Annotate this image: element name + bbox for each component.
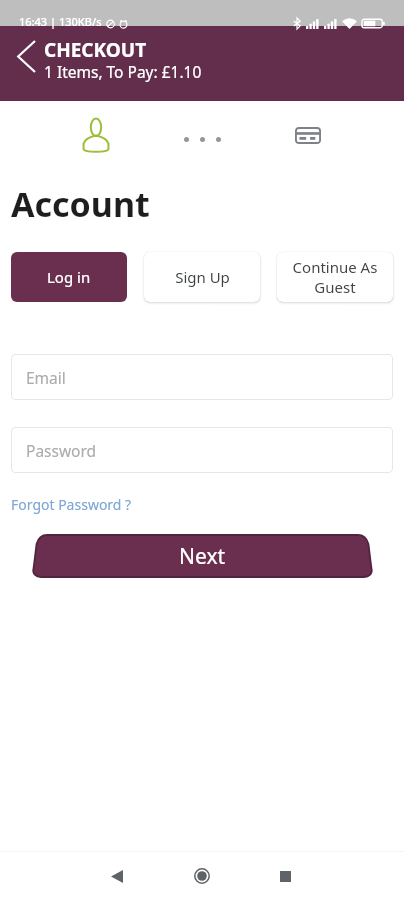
button[interactable]: Continue As Guest xyxy=(277,252,393,302)
staticText: CHECKOUT xyxy=(44,37,147,63)
button[interactable]: Forgot Password ? xyxy=(11,495,132,514)
staticText: Next xyxy=(179,542,226,571)
button[interactable]: Payment step xyxy=(288,120,328,150)
button[interactable]: Back xyxy=(0,26,44,86)
staticText: Password xyxy=(26,440,97,461)
staticText: Sign Up xyxy=(175,267,230,287)
button[interactable]: Sign Up xyxy=(144,252,260,302)
staticText: Log in xyxy=(47,267,91,287)
button[interactable]: Next xyxy=(32,535,373,577)
button[interactable]: Recents xyxy=(265,856,305,896)
staticText: Continue As Guest xyxy=(277,257,393,297)
staticText: 1 Items, To Pay: £1.10 xyxy=(44,61,202,82)
button[interactable]: Home xyxy=(182,856,222,896)
button[interactable]: Email xyxy=(11,354,393,400)
button[interactable]: Back xyxy=(97,856,137,896)
button[interactable]: Log in xyxy=(11,252,127,302)
staticText: Account xyxy=(11,181,150,227)
staticText: 16:43 | 130KB/s xyxy=(19,14,102,29)
button[interactable]: Password xyxy=(11,427,393,473)
staticText: Email xyxy=(26,367,66,388)
button[interactable]: Account step xyxy=(76,115,116,155)
